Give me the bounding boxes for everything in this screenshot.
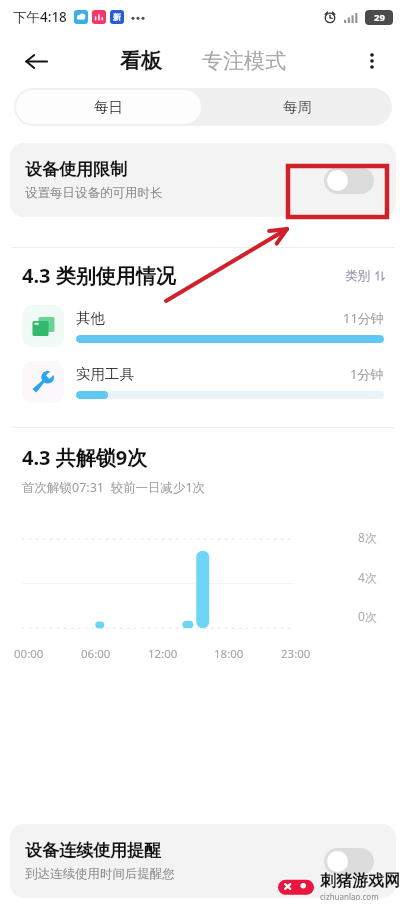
staticText: 00:00 xyxy=(14,646,44,662)
staticText: 11分钟 xyxy=(343,309,384,327)
staticText: 类别 xyxy=(345,268,370,284)
staticText: 每周 xyxy=(283,98,312,116)
staticText: 0次 xyxy=(358,608,377,624)
button[interactable]: 类别 xyxy=(340,263,390,289)
staticText: 23:00 xyxy=(281,646,311,662)
staticText: 18:00 xyxy=(214,646,244,662)
staticText: 其他 xyxy=(76,309,105,327)
staticText: 1分钟 xyxy=(350,365,384,383)
staticText: 4.3 类别使用情况 xyxy=(22,262,176,289)
button[interactable]: 每周 xyxy=(203,88,392,126)
staticText: 4.3 共解锁9次 xyxy=(22,444,148,471)
button[interactable]: 其他 xyxy=(22,303,384,349)
button[interactable]: 每日 xyxy=(16,90,201,124)
button[interactable]: 设备使用限制 xyxy=(10,143,396,217)
staticText: 29 xyxy=(374,11,385,24)
staticText: cizhuanlao.com xyxy=(320,891,379,902)
staticText: 设置每日设备的可用时长 xyxy=(25,185,163,201)
staticText: 设备连续使用提醒 xyxy=(25,840,161,861)
button[interactable]: 实用工具 xyxy=(22,359,384,405)
staticText: 实用工具 xyxy=(76,365,134,383)
staticText: 每日 xyxy=(94,98,123,116)
staticText: 到达连续使用时间后提醒您 xyxy=(25,866,175,882)
button[interactable]: Toggle 设备使用限制 xyxy=(324,167,374,194)
staticText: 设备使用限制 xyxy=(25,159,127,180)
staticText: 12:00 xyxy=(148,646,178,662)
staticText: 新 xyxy=(113,12,121,22)
button[interactable]: 专注模式 xyxy=(192,40,296,82)
staticText: 06:00 xyxy=(81,646,111,662)
staticText: 首次解锁07:31 较前一日减少1次 xyxy=(22,479,206,496)
staticText: 看板 xyxy=(120,48,162,74)
button[interactable]: 看板 xyxy=(110,40,172,82)
staticText: 下午4:18 xyxy=(13,8,67,26)
button[interactable]: Toggle 设备连续使用提醒 xyxy=(324,848,374,875)
staticText: 专注模式 xyxy=(202,48,286,74)
staticText: 4次 xyxy=(358,569,377,585)
staticText: 刺猪游戏网 xyxy=(320,871,400,891)
staticText: 8次 xyxy=(358,529,377,545)
button[interactable]: More options xyxy=(352,41,392,81)
button[interactable]: 设备连续使用提醒 xyxy=(10,824,396,898)
button[interactable]: Back xyxy=(16,41,56,81)
